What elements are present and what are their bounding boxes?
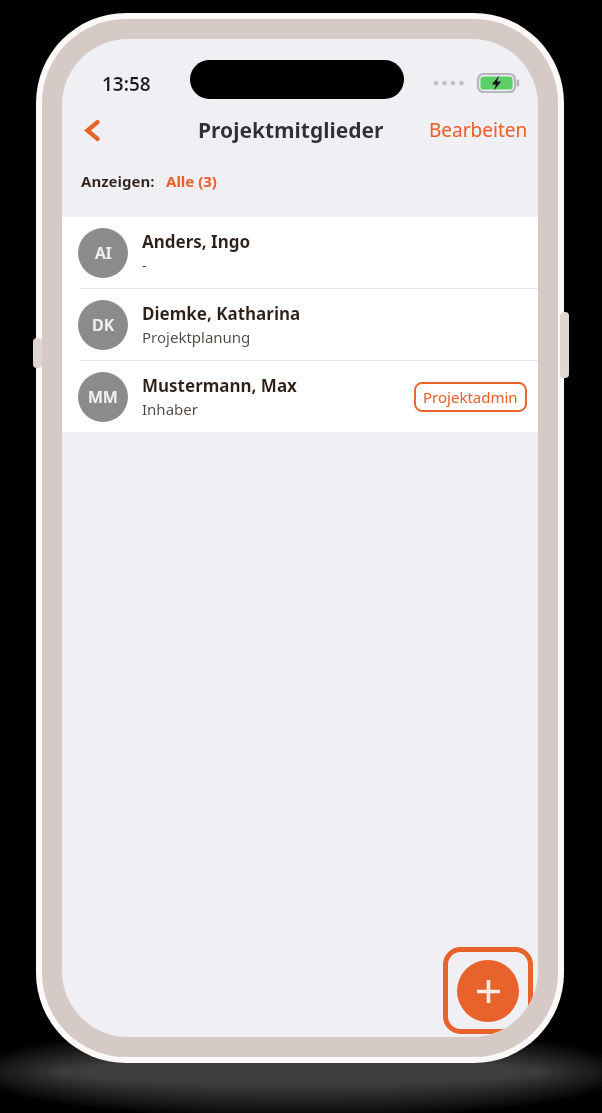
staticText: 13:58 (102, 71, 151, 97)
button[interactable]: Mitglied hinzufügen (443, 947, 533, 1034)
staticText: Bearbeiten (429, 117, 528, 143)
button[interactable]: Projektadmin (414, 382, 527, 412)
staticText: Inhaber (142, 399, 198, 419)
staticText: Projektplanung (142, 327, 251, 347)
button[interactable]: DK (62, 289, 538, 360)
button[interactable]: MM (62, 361, 538, 432)
staticText: MM (88, 386, 118, 408)
staticText: Projektmitglieder (198, 116, 384, 145)
button[interactable]: Zurück (68, 106, 116, 154)
staticText: Anders, Ingo (142, 230, 251, 253)
button[interactable]: AI (62, 217, 538, 288)
staticText: Diemke, Katharina (142, 302, 301, 325)
staticText: DK (92, 314, 115, 336)
staticText: Mustermann, Max (142, 374, 297, 397)
staticText: Anzeigen: (81, 171, 155, 191)
staticText: Projektadmin (423, 387, 518, 407)
staticText: Alle (3) (166, 171, 217, 191)
button[interactable]: Bearbeiten (419, 109, 538, 151)
staticText: - (142, 255, 147, 275)
button[interactable]: Alle (3) (164, 166, 219, 196)
staticText: AI (95, 242, 112, 264)
